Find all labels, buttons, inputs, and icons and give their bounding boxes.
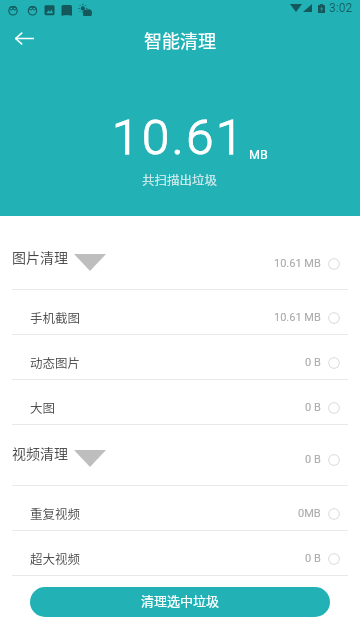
staticText: 图片清理: [12, 247, 68, 267]
staticText: 共扫描出垃圾: [142, 170, 218, 188]
button[interactable]: Select: [328, 357, 340, 369]
button[interactable]: 手机截图: [0, 290, 360, 334]
staticText: 0MB: [298, 507, 321, 520]
staticText: 重复视频: [30, 504, 81, 522]
staticText: 3:02: [329, 1, 353, 15]
button[interactable]: 大图: [0, 380, 360, 424]
staticText: 10.61: [112, 109, 246, 166]
staticText: 0 B: [305, 552, 321, 565]
staticText: 视频清理: [12, 443, 68, 463]
staticText: 清理选中垃圾: [141, 591, 220, 610]
staticText: 0 B: [305, 356, 321, 369]
button[interactable]: 图片清理: [0, 229, 360, 289]
staticText: 10.61 MB: [274, 257, 321, 270]
button[interactable]: 重复视频: [0, 486, 360, 530]
staticText: 动态图片: [30, 353, 81, 371]
button[interactable]: 超大视频: [0, 531, 360, 575]
button[interactable]: Select: [328, 508, 340, 520]
staticText: 0 B: [305, 453, 321, 466]
staticText: MB: [249, 147, 268, 162]
staticText: 10.61 MB: [274, 311, 321, 324]
button[interactable]: 清理选中垃圾: [30, 587, 330, 617]
staticText: 超大视频: [30, 549, 81, 567]
button[interactable]: Select: [328, 312, 340, 324]
staticText: 手机截图: [30, 308, 81, 326]
staticText: 智能清理: [144, 27, 216, 53]
button[interactable]: 视频清理: [0, 425, 360, 485]
button[interactable]: Select: [328, 553, 340, 565]
button[interactable]: Select: [328, 258, 340, 270]
staticText: 10.61: [112, 109, 246, 166]
button[interactable]: Select: [328, 402, 340, 414]
button[interactable]: 动态图片: [0, 335, 360, 379]
button[interactable]: Back: [8, 22, 40, 54]
staticText: 大图: [30, 398, 56, 416]
staticText: 0 B: [305, 401, 321, 414]
button[interactable]: Select: [328, 454, 340, 466]
